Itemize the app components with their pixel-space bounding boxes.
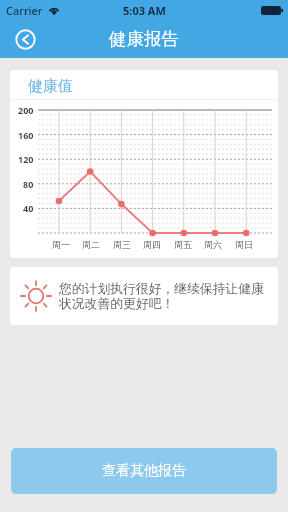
staticText: 健康报告 (109, 28, 179, 50)
staticText: 5:03 AM (123, 3, 166, 18)
staticText: 周日 (235, 239, 253, 250)
staticText: 周五 (174, 239, 192, 250)
staticText: 周六 (204, 239, 222, 250)
button[interactable]: Back (9, 23, 41, 55)
staticText: 200 (18, 104, 34, 116)
staticText: 周三 (113, 239, 131, 250)
staticText: 120 (18, 153, 34, 165)
button[interactable]: 查看其他报告 (11, 448, 277, 494)
staticText: 周一 (52, 239, 70, 250)
staticText: 40 (23, 202, 34, 214)
staticText: 80 (23, 178, 34, 190)
staticText: 健康值 (28, 77, 73, 96)
staticText: Carrier (6, 3, 43, 18)
staticText: 160 (18, 129, 34, 141)
staticText: 周二 (82, 239, 100, 250)
staticText: 查看其他报告 (102, 462, 186, 480)
staticText: 您的计划执行很好，继续保持让健康 状况改善的更好吧！ (59, 281, 264, 312)
staticText: 周四 (143, 239, 161, 250)
